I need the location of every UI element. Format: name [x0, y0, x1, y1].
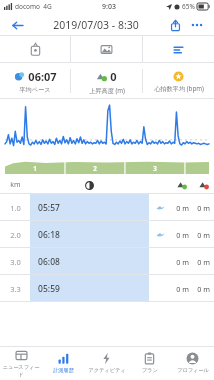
- staticText: 2019/07/03 - 8:30: [53, 18, 139, 32]
- staticText: 3.3: [10, 284, 21, 294]
- staticText: 平均ペース: [19, 86, 51, 94]
- staticText: 0 m: [176, 203, 189, 213]
- staticText: docomo: [15, 2, 40, 11]
- button[interactable]: ニュースフィード: [0, 346, 42, 380]
- staticText: 0 m: [197, 257, 210, 267]
- staticText: プラン: [142, 367, 158, 374]
- button[interactable]: 2.0: [0, 221, 214, 248]
- button[interactable]: プラン: [128, 346, 171, 380]
- staticText: 0 m: [197, 284, 210, 294]
- staticText: 05:59: [38, 283, 60, 295]
- button[interactable]: 1.0: [0, 194, 214, 221]
- button[interactable]: プロフィール: [171, 346, 214, 380]
- staticText: 0 m: [197, 230, 210, 240]
- button[interactable]: Summary: [0, 36, 70, 63]
- staticText: 06:08: [38, 256, 60, 268]
- button[interactable]: Share: [166, 16, 184, 34]
- staticText: アクティビティ: [88, 367, 126, 374]
- staticText: 4G: [43, 2, 52, 11]
- staticText: 0: [110, 69, 117, 84]
- button[interactable]: アクティビティ: [85, 346, 128, 380]
- button[interactable]: Map: [71, 36, 142, 63]
- staticText: 06:07: [28, 69, 57, 84]
- staticText: 2.0: [10, 230, 21, 240]
- staticText: 上昇高度 (m): [89, 86, 125, 94]
- staticText: 0 m: [197, 203, 210, 213]
- button[interactable]: 06:07: [0, 63, 70, 99]
- staticText: 0 m: [176, 284, 189, 294]
- staticText: 3: [153, 164, 157, 172]
- staticText: 05:57: [38, 202, 60, 214]
- button[interactable]: Back: [8, 16, 26, 34]
- button[interactable]: 0: [71, 63, 142, 99]
- staticText: 65%: [182, 2, 195, 11]
- staticText: プロフィール: [177, 367, 209, 374]
- button[interactable]: More options: [188, 16, 206, 34]
- staticText: 0 m: [176, 257, 189, 267]
- staticText: km: [10, 180, 21, 190]
- staticText: ニュースフィード: [0, 364, 42, 378]
- staticText: 3.0: [10, 257, 21, 267]
- staticText: 1: [33, 164, 37, 172]
- button[interactable]: Splits: [143, 36, 214, 63]
- staticText: 9:03: [102, 2, 116, 12]
- staticText: 心拍数平均 (bpm): [154, 84, 204, 92]
- staticText: 06:18: [38, 229, 60, 241]
- button[interactable]: 3.3: [0, 275, 214, 302]
- button[interactable]: 3.0: [0, 248, 214, 275]
- button[interactable]: 計測履歴: [42, 346, 85, 380]
- staticText: 計測履歴: [53, 367, 74, 374]
- staticText: 1.0: [10, 203, 21, 213]
- staticText: 0 m: [176, 230, 189, 240]
- button[interactable]: 心拍数平均 (bpm): [143, 63, 214, 99]
- staticText: 2: [93, 164, 97, 172]
